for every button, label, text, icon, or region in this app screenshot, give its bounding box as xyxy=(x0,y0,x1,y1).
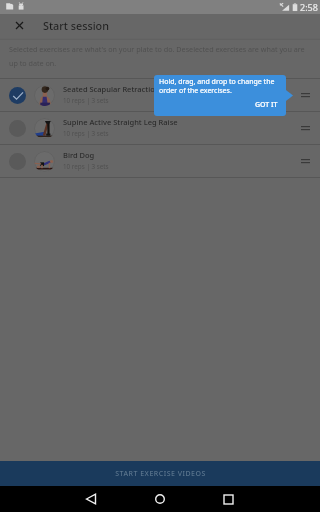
button[interactable]: Home xyxy=(147,486,173,512)
staticText: 10 reps | 3 sets xyxy=(63,129,109,138)
button[interactable]: GOT IT xyxy=(249,100,281,116)
staticText: Hold, drag, and drop to change the order… xyxy=(159,77,281,95)
button[interactable]: Reorder xyxy=(293,116,317,140)
button[interactable]: Reorder xyxy=(293,149,317,173)
staticText: 10 reps | 3 sets xyxy=(63,162,109,171)
staticText: Supine Active Straight Leg Raise xyxy=(63,117,178,127)
staticText: Selected exercises are what's on your pl… xyxy=(9,44,313,68)
staticText: Bird Dog xyxy=(63,150,95,160)
button[interactable]: Close xyxy=(6,14,32,37)
button[interactable]: Supine Active Straight Leg Raise xyxy=(0,112,320,144)
button[interactable]: START EXERCISE VIDEOS xyxy=(0,461,320,486)
staticText: 10 reps | 3 sets xyxy=(63,96,109,105)
button[interactable]: Recents xyxy=(215,486,241,512)
button[interactable]: Seated Scapular Retraction xyxy=(0,79,320,111)
staticText: GOT IT xyxy=(255,100,278,110)
button[interactable]: Back xyxy=(78,486,104,512)
button[interactable]: Bird Dog xyxy=(0,145,320,177)
staticText: Start session xyxy=(43,18,109,33)
button[interactable]: Reorder xyxy=(293,83,317,107)
staticText: Seated Scapular Retraction xyxy=(63,84,160,94)
staticText: START EXERCISE VIDEOS xyxy=(115,469,206,479)
staticText: 2:58 xyxy=(300,1,318,13)
